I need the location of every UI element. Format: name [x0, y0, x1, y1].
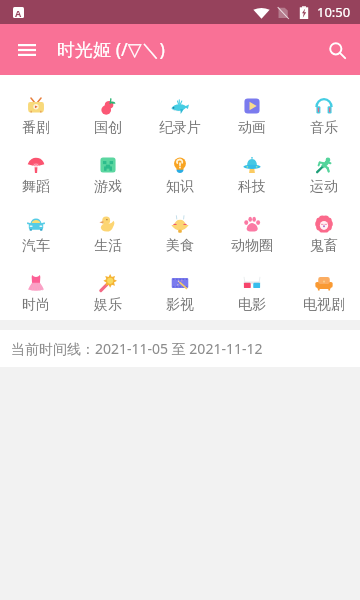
- button[interactable]: 汽车: [0, 197, 72, 256]
- staticText: 影视: [166, 296, 194, 314]
- button[interactable]: 科技: [216, 138, 288, 197]
- button[interactable]: 舞蹈: [0, 138, 72, 197]
- staticText: 国创: [94, 119, 122, 137]
- staticText: 生活: [94, 237, 122, 255]
- staticText: 游戏: [94, 178, 122, 196]
- staticText: 当前时间线：2021-11-05 至 2021-11-12: [11, 339, 263, 358]
- button[interactable]: 运动: [288, 138, 360, 197]
- button[interactable]: Menu: [8, 31, 46, 69]
- staticText: 知识: [166, 178, 194, 196]
- button[interactable]: 娱乐: [72, 256, 144, 315]
- staticText: 娱乐: [94, 296, 122, 314]
- staticText: 科技: [238, 178, 266, 196]
- staticText: 电影: [238, 296, 266, 314]
- staticText: A: [15, 7, 22, 18]
- staticText: 舞蹈: [22, 178, 50, 196]
- button[interactable]: 生活: [72, 197, 144, 256]
- button[interactable]: 音乐: [288, 79, 360, 138]
- button[interactable]: 时尚: [0, 256, 72, 315]
- staticText: 时尚: [22, 296, 50, 314]
- button[interactable]: 国创: [72, 79, 144, 138]
- staticText: 动物圈: [231, 237, 273, 255]
- button[interactable]: 电影: [216, 256, 288, 315]
- staticText: 美食: [166, 237, 194, 255]
- button[interactable]: 纪录片: [144, 79, 216, 138]
- button[interactable]: 动画: [216, 79, 288, 138]
- button[interactable]: 鬼畜: [288, 197, 360, 256]
- button[interactable]: 动物圈: [216, 197, 288, 256]
- staticText: 音乐: [310, 119, 338, 137]
- staticText: 运动: [310, 178, 338, 196]
- button[interactable]: 美食: [144, 197, 216, 256]
- button[interactable]: Search: [318, 31, 356, 69]
- staticText: 10:50: [317, 3, 351, 21]
- staticText: 动画: [238, 119, 266, 137]
- staticText: 鬼畜: [310, 237, 338, 255]
- button[interactable]: 知识: [144, 138, 216, 197]
- button[interactable]: 电视剧: [288, 256, 360, 315]
- button[interactable]: 影视: [144, 256, 216, 315]
- staticText: 时光姬 (/▽＼): [57, 37, 166, 62]
- button[interactable]: 游戏: [72, 138, 144, 197]
- staticText: 汽车: [22, 237, 50, 255]
- staticText: 番剧: [22, 119, 50, 137]
- button[interactable]: 番剧: [0, 79, 72, 138]
- staticText: 纪录片: [159, 119, 201, 137]
- staticText: 电视剧: [303, 296, 345, 314]
